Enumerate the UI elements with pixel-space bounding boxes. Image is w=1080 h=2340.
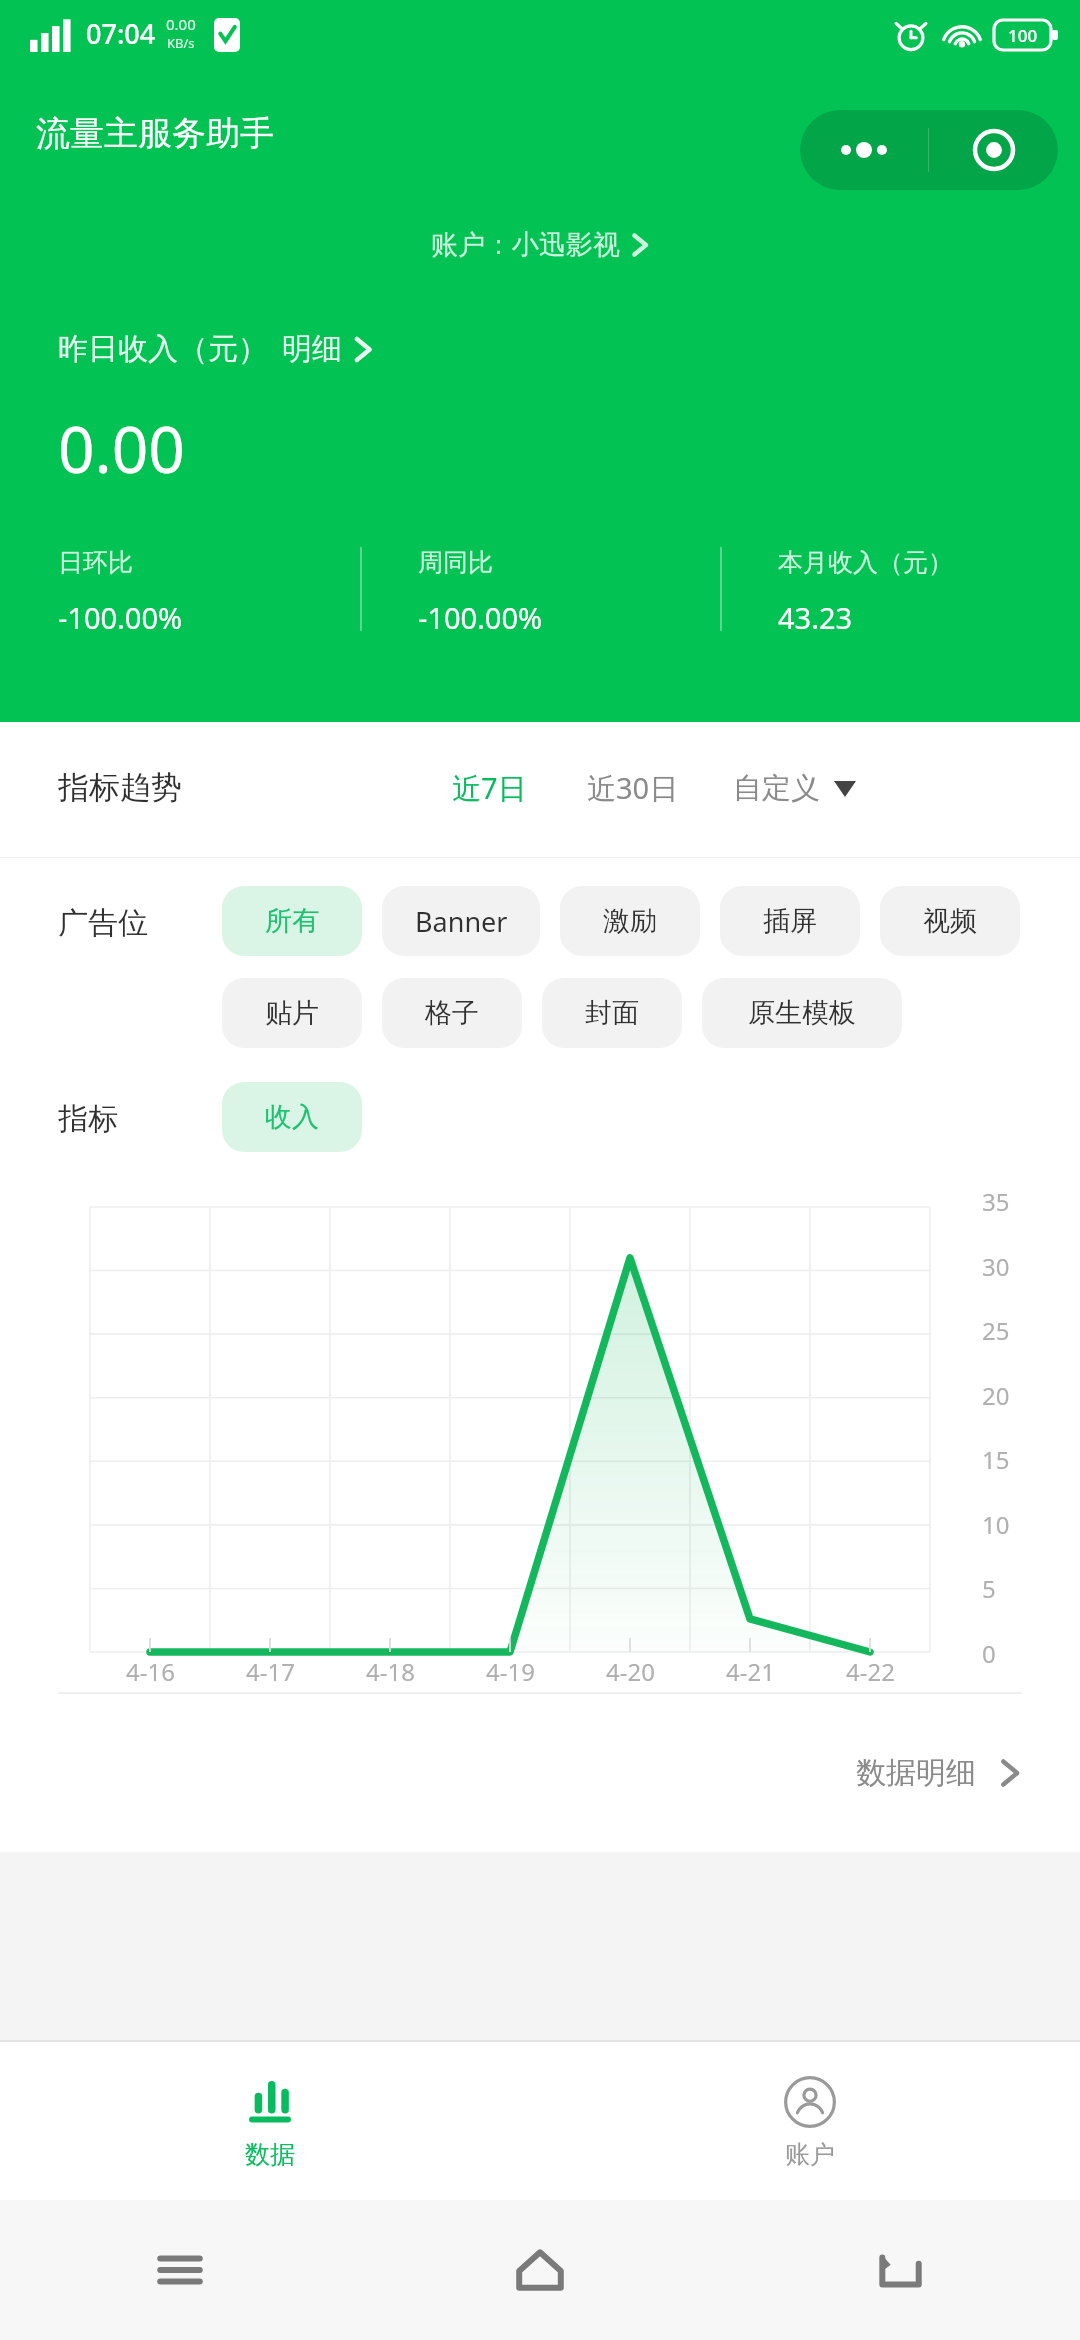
staticText: 4-17 [246,1655,295,1688]
button[interactable]: 昨日收入（元） [58,330,374,368]
button[interactable]: 近30日 [587,768,679,808]
button[interactable]: 所有 [222,886,362,956]
staticText: Banner [415,903,508,940]
button[interactable]: 格子 [382,978,522,1048]
staticText: 15 [982,1443,1010,1476]
staticText: 10 [982,1508,1010,1541]
staticText: 收入 [265,1100,319,1134]
button[interactable]: 封面 [542,978,682,1048]
staticText: 4-21 [726,1655,775,1688]
button[interactable]: Banner [382,886,540,956]
staticText: -100.00% [418,598,543,637]
staticText: 4-19 [486,1655,535,1688]
staticText: 流量主服务助手 [36,112,274,155]
staticText: 贴片 [265,996,319,1030]
button[interactable]: Close mini program [929,110,1058,190]
staticText: 账户 [785,2139,835,2170]
staticText: 30 [982,1250,1010,1283]
staticText: 35 [982,1185,1010,1218]
staticText: 账户：小迅影视 [431,228,620,262]
staticText: -100.00% [58,598,183,637]
button[interactable]: 插屏 [720,886,860,956]
staticText: 日环比 [58,547,133,578]
staticText: 近7日 [452,768,527,808]
button[interactable]: 数据明细 [0,1694,1022,1852]
staticText: 4-16 [126,1655,175,1688]
staticText: 插屏 [763,904,817,938]
button[interactable]: 自定义 [733,770,856,807]
staticText: 0.00 [58,405,185,492]
button[interactable]: 数据 [0,2042,540,2200]
staticText: 5 [982,1572,996,1605]
button[interactable]: 激励 [560,886,700,956]
button[interactable]: Recents [0,2200,360,2340]
staticText: 广告位 [58,904,222,942]
staticText: 0.00 [166,14,196,34]
staticText: 25 [982,1314,1010,1347]
staticText: 4-22 [846,1655,895,1688]
staticText: 指标趋势 [58,768,182,807]
staticText: 数据明细 [856,1754,976,1792]
button[interactable]: More [800,110,928,190]
button[interactable]: More [800,110,1058,190]
staticText: 近30日 [587,768,679,808]
button[interactable]: 账户：小迅影视 [431,228,650,262]
button[interactable]: 贴片 [222,978,362,1048]
staticText: 20 [982,1379,1010,1412]
staticText: 视频 [923,904,977,938]
staticText: 07:04 [86,15,156,52]
button[interactable]: 视频 [880,886,1020,956]
staticText: 4-20 [606,1655,655,1688]
staticText: 100 [1008,24,1038,47]
staticText: 43.23 [778,598,853,637]
staticText: KB/s [167,34,195,52]
staticText: 所有 [265,904,319,938]
button[interactable]: 收入 [222,1082,362,1152]
staticText: 自定义 [733,770,820,807]
button[interactable]: Home [360,2200,720,2340]
staticText: 格子 [425,996,479,1030]
staticText: 数据 [245,2139,295,2170]
staticText: 激励 [603,904,657,938]
button[interactable]: 近7日 [452,768,527,808]
staticText: 昨日收入（元） [58,330,268,368]
staticText: 4-18 [366,1655,415,1688]
button[interactable]: 原生模板 [702,978,902,1048]
staticText: 指标 [58,1100,222,1138]
staticText: 本月收入（元） [778,547,953,578]
staticText: 原生模板 [748,996,856,1030]
button[interactable]: 账户 [540,2042,1080,2200]
staticText: 明细 [282,330,342,368]
staticText: 封面 [585,996,639,1030]
staticText: 周同比 [418,547,493,578]
button[interactable]: Back [720,2200,1080,2340]
staticText: 0 [982,1637,996,1670]
